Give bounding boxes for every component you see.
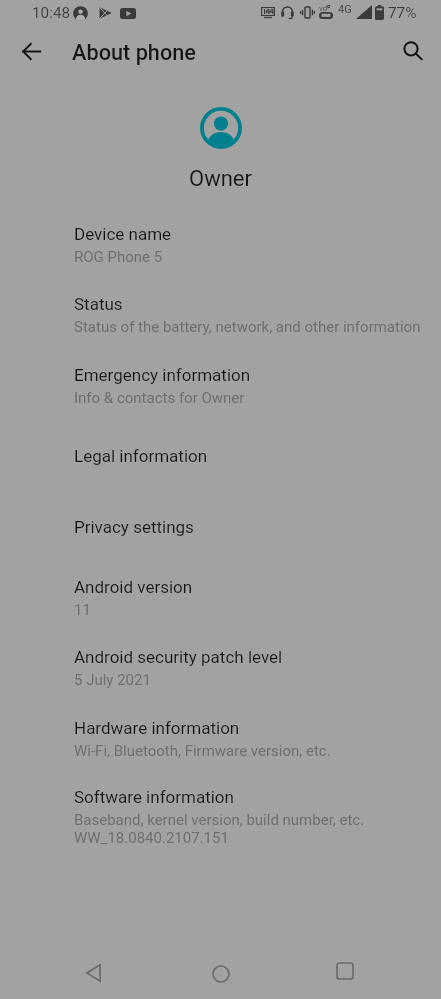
button[interactable]: Back — [74, 953, 114, 993]
staticText: 11 — [74, 601, 91, 619]
staticText: 77% — [388, 4, 417, 22]
staticText: Android security patch level — [74, 647, 283, 667]
staticText: Android version — [74, 577, 193, 597]
button[interactable]: Privacy settings — [0, 511, 441, 547]
staticText: Hardware information — [74, 718, 240, 738]
button[interactable]: Back — [11, 31, 51, 71]
staticText: vo — [319, 4, 328, 13]
button[interactable]: Recents — [325, 951, 365, 991]
button[interactable]: Android version — [0, 571, 441, 625]
button[interactable]: Hardware information — [0, 712, 441, 766]
button[interactable]: Home — [201, 954, 241, 994]
staticText: Status of the battery, network, and othe… — [74, 318, 421, 336]
staticText: Privacy settings — [74, 517, 194, 537]
staticText: 4G — [338, 3, 352, 16]
staticText: 5 July 2021 — [74, 671, 151, 689]
staticText: Owner — [0, 166, 441, 192]
button[interactable]: Legal information — [0, 440, 441, 476]
staticText: Software information — [74, 787, 234, 807]
staticText: Baseband, kernel version, build number, … — [74, 811, 365, 847]
button[interactable]: Software information — [0, 781, 441, 855]
button[interactable]: Android security patch level — [0, 641, 441, 695]
staticText: Legal information — [74, 446, 208, 466]
button[interactable]: Search — [393, 31, 433, 71]
staticText: ROG Phone 5 — [74, 248, 163, 266]
button[interactable]: Emergency information — [0, 359, 441, 413]
staticText: Device name — [74, 224, 172, 244]
staticText: Status — [74, 294, 123, 314]
staticText: Wi-Fi, Bluetooth, Firmware version, etc. — [74, 742, 331, 760]
staticText: About phone — [72, 40, 196, 65]
staticText: Info & contacts for Owner — [74, 389, 245, 407]
button[interactable]: Device name — [0, 218, 441, 272]
staticText: 10:48 — [32, 4, 71, 22]
staticText: Emergency information — [74, 365, 251, 385]
button[interactable]: Status — [0, 288, 441, 342]
